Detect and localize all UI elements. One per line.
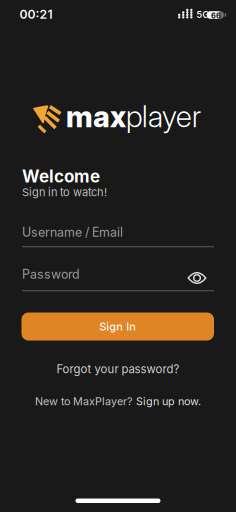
staticText: Password xyxy=(22,267,80,282)
staticText: Sign up now. xyxy=(136,395,201,408)
button[interactable]: Show password xyxy=(187,270,207,286)
button[interactable]: Sign In xyxy=(21,312,214,340)
staticText: Forgot your password? xyxy=(56,362,179,376)
staticText: 00:21 xyxy=(19,7,52,22)
staticText: Welcome xyxy=(22,166,100,187)
button[interactable]: Forgot your password? xyxy=(56,362,179,376)
button[interactable]: Username / Email xyxy=(22,225,214,247)
staticText: Username / Email xyxy=(22,225,123,240)
staticText: maxplayer xyxy=(66,99,201,134)
staticText: 66 xyxy=(211,11,221,20)
staticText: 5G xyxy=(196,9,209,20)
staticText: New to MaxPlayer? xyxy=(35,395,136,408)
staticText: Sign in to watch! xyxy=(22,185,107,199)
button[interactable]: Sign up now. xyxy=(136,395,201,408)
staticText: Sign In xyxy=(99,320,136,333)
button[interactable]: Password xyxy=(22,267,214,291)
